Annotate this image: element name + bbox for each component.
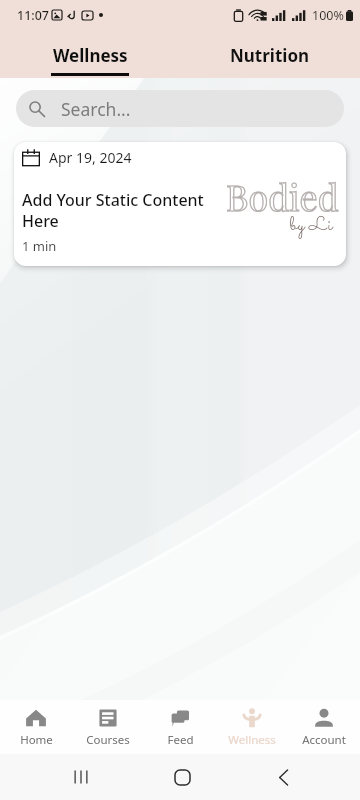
staticText: Wellness <box>228 732 276 748</box>
button[interactable]: Recent apps <box>64 760 98 794</box>
staticText: by Li <box>290 210 333 241</box>
staticText: Wellness <box>53 44 128 67</box>
button[interactable]: Courses <box>72 700 144 754</box>
staticText: 1 min <box>22 237 57 255</box>
staticText: Add Your Static Content Here <box>22 189 222 232</box>
staticText: Bodied <box>226 172 339 220</box>
staticText: Courses <box>86 732 130 748</box>
staticText: Apr 19, 2024 <box>49 148 132 167</box>
staticText: 11:07 <box>17 7 50 24</box>
staticText: 100% <box>312 7 344 24</box>
button[interactable]: Home <box>165 760 199 794</box>
staticText: Account <box>302 732 346 748</box>
staticText: Home <box>20 732 53 748</box>
button[interactable]: Search... <box>16 90 344 127</box>
staticText: Nutrition <box>230 44 310 67</box>
staticText: Search... <box>61 97 131 121</box>
button[interactable]: Back <box>266 760 300 794</box>
button[interactable]: Wellness <box>216 700 288 754</box>
button[interactable]: Account <box>288 700 360 754</box>
button[interactable]: Feed <box>144 700 216 754</box>
button[interactable]: Home <box>0 700 72 754</box>
button[interactable]: Nutrition <box>180 30 360 78</box>
button[interactable]: Bodied <box>14 142 346 266</box>
button[interactable]: Wellness <box>0 30 180 78</box>
staticText: Feed <box>167 732 194 748</box>
